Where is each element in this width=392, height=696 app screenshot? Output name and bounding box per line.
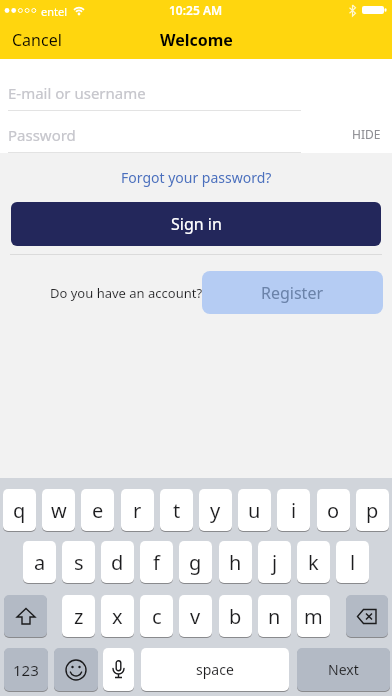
staticText: Sign in <box>171 213 222 235</box>
staticText: q <box>13 497 26 524</box>
staticText: 10:25 AM <box>169 2 223 18</box>
staticText: p <box>366 497 379 524</box>
button[interactable]: h <box>219 541 252 583</box>
button[interactable]: Cancel <box>12 29 62 51</box>
button[interactable]: c <box>140 595 173 637</box>
button[interactable]: q <box>3 489 36 531</box>
staticText: entel <box>41 4 68 19</box>
staticText: a <box>34 549 46 576</box>
button[interactable]: Next <box>297 648 390 691</box>
staticText: Register <box>261 282 324 304</box>
staticText: f <box>153 549 160 576</box>
button[interactable]: y <box>199 489 232 531</box>
staticText: n <box>268 603 281 630</box>
staticText: v <box>190 603 201 630</box>
staticText: h <box>229 549 242 576</box>
button[interactable]: i <box>277 489 310 531</box>
staticText: r <box>133 497 142 524</box>
staticText: i <box>291 497 297 524</box>
button[interactable]: s <box>62 541 95 583</box>
button[interactable]: space <box>141 648 289 691</box>
staticText: x <box>112 603 123 630</box>
button[interactable]: Sign in <box>11 202 381 246</box>
staticText: Forgot your password? <box>121 168 272 187</box>
button[interactable]: f <box>140 541 173 583</box>
staticText: l <box>350 549 356 576</box>
staticText: z <box>74 603 84 630</box>
button[interactable]: Forgot your password? <box>121 168 272 187</box>
button[interactable] <box>4 595 47 637</box>
staticText: e <box>92 497 104 524</box>
staticText: g <box>189 549 202 576</box>
button[interactable]: t <box>160 489 193 531</box>
staticText: Password <box>8 125 76 145</box>
button[interactable]: j <box>258 541 291 583</box>
button[interactable] <box>54 648 98 691</box>
button[interactable]: m <box>297 595 330 637</box>
button[interactable]: z <box>62 595 95 637</box>
staticText: m <box>304 603 323 630</box>
button[interactable]: 123 <box>4 648 48 691</box>
button[interactable]: o <box>317 489 350 531</box>
button[interactable]: Register <box>202 271 383 314</box>
button[interactable]: d <box>101 541 134 583</box>
staticText: s <box>74 549 84 576</box>
button[interactable]: b <box>219 595 252 637</box>
staticText: o <box>327 497 340 524</box>
button[interactable]: x <box>101 595 134 637</box>
staticText: w <box>51 497 67 524</box>
button[interactable]: v <box>179 595 212 637</box>
button[interactable]: HIDE <box>352 126 381 142</box>
staticText: y <box>210 497 221 524</box>
button[interactable]: k <box>297 541 330 583</box>
button[interactable]: e <box>81 489 114 531</box>
staticText: d <box>111 549 124 576</box>
button[interactable]: a <box>23 541 56 583</box>
staticText: Welcome <box>160 29 233 51</box>
staticText: E-mail or username <box>8 83 146 103</box>
staticText: HIDE <box>352 126 381 142</box>
staticText: space <box>196 660 234 679</box>
button[interactable]: g <box>179 541 212 583</box>
button[interactable]: n <box>258 595 291 637</box>
staticText: 123 <box>13 660 39 680</box>
staticText: j <box>272 549 278 576</box>
button[interactable]: l <box>336 541 369 583</box>
button[interactable]: u <box>238 489 271 531</box>
button[interactable]: w <box>42 489 75 531</box>
button[interactable] <box>103 648 134 691</box>
button[interactable]: r <box>121 489 154 531</box>
staticText: k <box>308 549 319 576</box>
staticText: c <box>152 603 162 630</box>
staticText: t <box>173 497 181 524</box>
button[interactable] <box>346 595 388 637</box>
staticText: b <box>229 603 242 630</box>
staticText: Next <box>328 660 359 679</box>
button[interactable]: p <box>356 489 389 531</box>
staticText: Cancel <box>12 29 62 51</box>
staticText: u <box>248 497 261 524</box>
staticText: Do you have an account? <box>50 284 203 302</box>
